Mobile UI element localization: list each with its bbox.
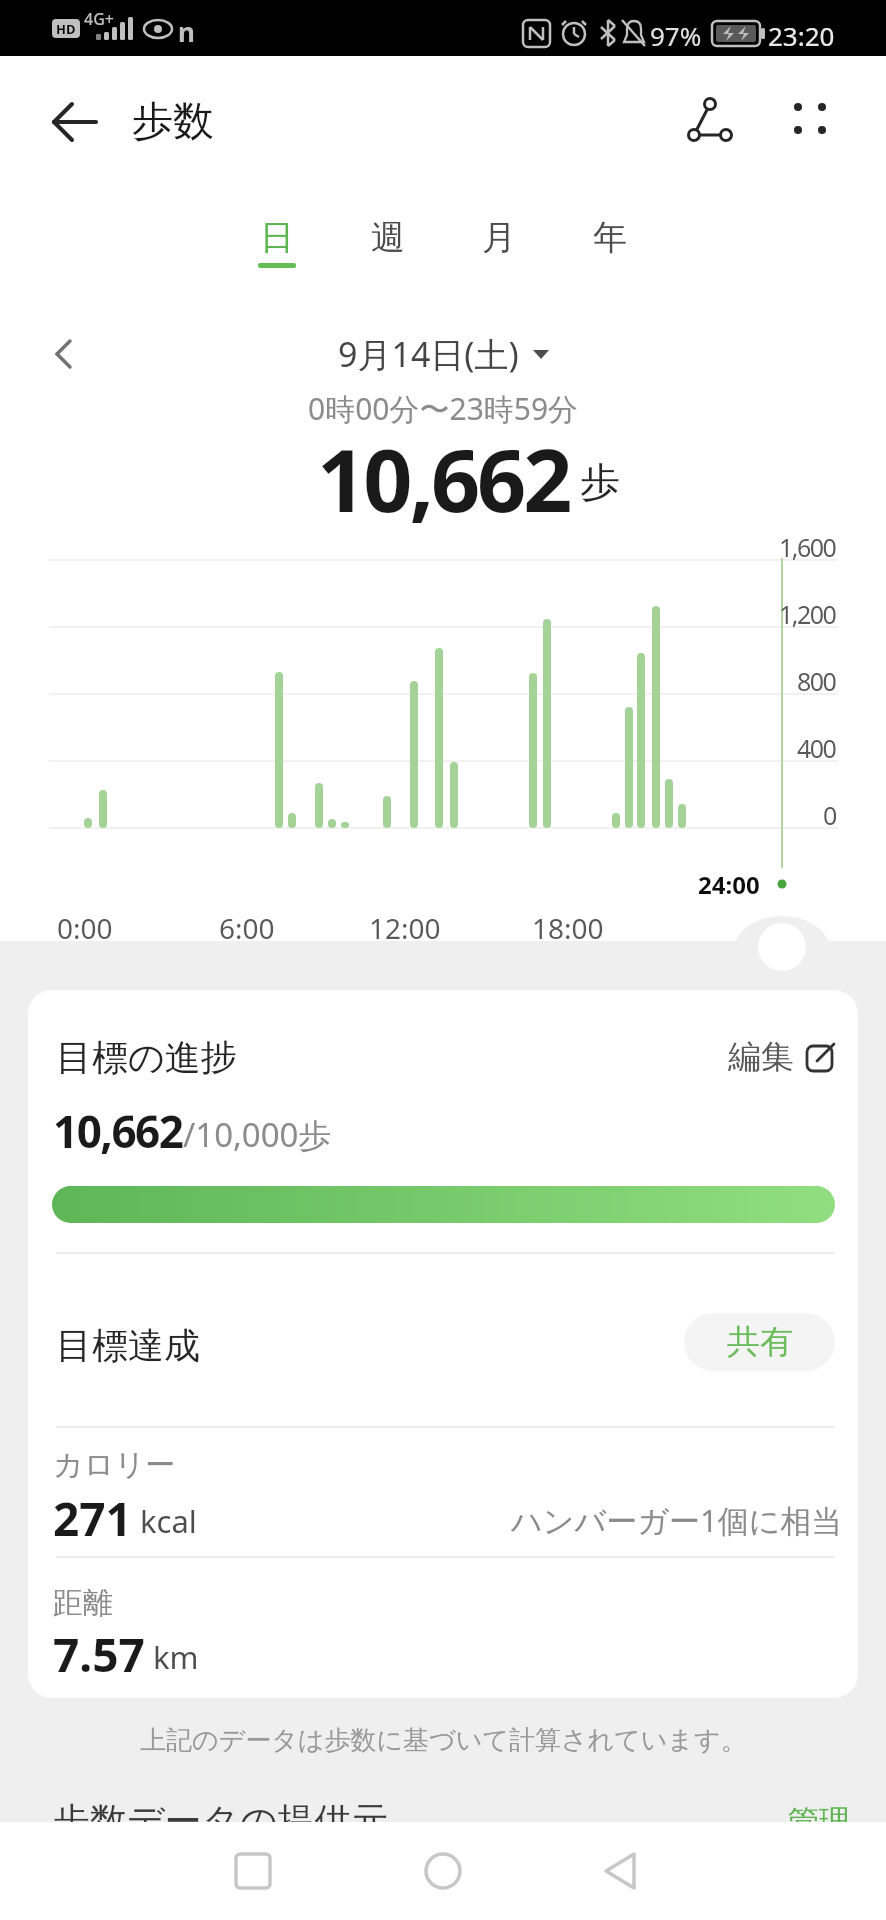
staticText: 6:00 xyxy=(219,909,275,941)
staticText: HD xyxy=(56,20,76,38)
staticText: 歩数データの提供元 xyxy=(53,1798,389,1845)
staticText: 18:00 xyxy=(532,909,604,941)
staticText: 1,200 xyxy=(779,597,836,629)
staticText: 共有 xyxy=(727,1321,793,1363)
staticText: 12:00 xyxy=(369,909,441,941)
button[interactable] xyxy=(780,85,842,153)
button[interactable] xyxy=(215,1834,291,1908)
staticText: 距離 xyxy=(53,1584,113,1622)
staticText: n xyxy=(178,14,195,44)
staticText: 目標達成 xyxy=(56,1323,200,1368)
staticText: 23:20 xyxy=(768,18,835,50)
staticText: 0 xyxy=(823,798,836,830)
staticText: /10,000歩 xyxy=(183,1112,332,1157)
staticText: 日 xyxy=(260,216,294,259)
button[interactable] xyxy=(40,330,88,378)
staticText: 400 xyxy=(797,731,836,763)
staticText: 週 xyxy=(371,216,405,259)
button[interactable] xyxy=(676,88,744,156)
button[interactable]: 9月14日(土) xyxy=(0,330,886,378)
staticText: 10,662 xyxy=(317,420,570,525)
button[interactable]: 編集 xyxy=(728,1030,848,1084)
staticText: 歩 xyxy=(580,457,620,507)
staticText: km xyxy=(153,1636,199,1678)
staticText: 271 xyxy=(53,1487,132,1547)
staticText: 月 xyxy=(482,216,516,259)
staticText: 97% xyxy=(650,18,702,50)
staticText: 9月14日(土) xyxy=(338,331,519,377)
staticText: カロリー xyxy=(53,1446,176,1484)
staticText: 上記のデータは歩数に基づいて計算されています。 xyxy=(140,1724,747,1757)
button[interactable]: 年 xyxy=(554,208,665,266)
staticText: 目標の進捗 xyxy=(56,1035,237,1080)
staticText: 歩数 xyxy=(132,96,214,148)
staticText: 管理 xyxy=(788,1802,850,1841)
staticText: 24:00 xyxy=(698,868,760,900)
staticText: 10,662 xyxy=(53,1101,183,1161)
button[interactable] xyxy=(405,1834,481,1908)
button[interactable]: 共有 xyxy=(684,1313,835,1371)
staticText: 0時00分〜23時59分 xyxy=(308,388,579,428)
button[interactable]: 管理 xyxy=(720,1796,850,1846)
staticText: 0:00 xyxy=(57,909,113,941)
button[interactable]: 月 xyxy=(443,208,554,266)
button[interactable]: 日 xyxy=(221,208,332,266)
staticText: 4G+ xyxy=(84,8,114,28)
staticText: 編集 xyxy=(728,1036,794,1078)
button[interactable] xyxy=(40,88,108,156)
staticText: 1,600 xyxy=(779,530,836,562)
button[interactable] xyxy=(585,1834,661,1908)
staticText: kcal xyxy=(140,1500,197,1542)
staticText: 7.57 xyxy=(53,1623,145,1683)
staticText: 年 xyxy=(593,216,627,259)
button[interactable]: 週 xyxy=(332,208,443,266)
staticText: ハンバーガー1個に相当 xyxy=(511,1499,843,1539)
staticText: 800 xyxy=(797,664,836,696)
